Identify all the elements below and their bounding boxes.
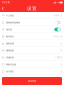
button[interactable]: 账号安全 [0,33,64,40]
button[interactable]: 存储空间 [0,54,64,61]
button[interactable]: Back [0,5,5,12]
staticText: 已认证 [54,35,60,38]
button[interactable]: 关于我们 [0,68,64,75]
staticText: 存储空间 [6,56,14,59]
staticText: 设置 [27,6,37,11]
staticText: 接收新消息通知 [6,21,20,24]
staticText: 隐私设置 [6,42,14,45]
staticText: 下午3:45 [1,1,9,4]
staticText: 个人信息 [6,14,14,17]
button[interactable]: 隐私设置 [0,40,64,47]
button[interactable]: 退出登录 [2,77,62,85]
button[interactable]: 接收新消息通知 [0,19,64,26]
button[interactable]: 帮助与反馈 [0,61,64,68]
staticText: 关于我们 [6,70,14,73]
button[interactable]: 通用设置 [0,47,64,54]
staticText: 账号安全 [6,35,14,38]
button[interactable]: 免打扰 [0,26,64,33]
staticText: 通用设置 [6,49,14,52]
button[interactable]: 个人信息 [0,12,64,19]
staticText: 未设置 [54,14,60,17]
staticText: 免打扰 [6,28,12,31]
staticText: 帮助与反馈 [6,63,16,66]
staticText: 1.2GB [55,56,60,59]
staticText: 退出登录 [28,80,36,82]
